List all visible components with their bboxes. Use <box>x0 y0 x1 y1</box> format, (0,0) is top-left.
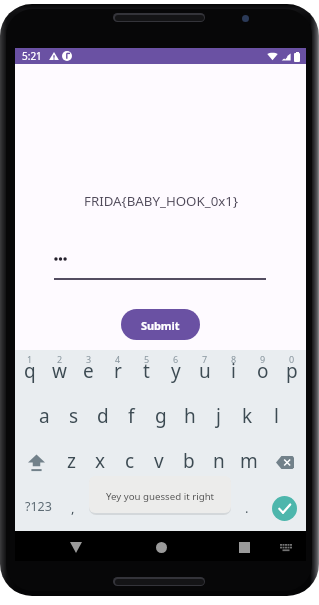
button[interactable]: g <box>146 395 175 440</box>
staticText: 7 <box>202 353 208 365</box>
staticText: x <box>95 448 106 474</box>
button[interactable]: Enter <box>272 496 297 521</box>
staticText: FRIDA{BABY_HOOK_0x1} <box>84 192 238 210</box>
button[interactable]: z <box>57 440 86 485</box>
button[interactable]: l <box>262 395 291 440</box>
staticText: ?123 <box>25 498 52 515</box>
staticText: 5 <box>144 353 150 365</box>
staticText: 3 <box>86 353 92 365</box>
staticText: 0 <box>289 353 295 365</box>
button[interactable]: Shift <box>15 440 57 485</box>
staticText: r <box>114 358 122 384</box>
button[interactable]: a <box>30 395 59 440</box>
staticText: 5:21 <box>22 49 42 63</box>
button[interactable]: j <box>204 395 233 440</box>
staticText: u <box>199 358 211 384</box>
staticText: m <box>240 448 258 474</box>
button[interactable]: 9 <box>248 350 277 395</box>
button[interactable]: 1 <box>15 350 45 395</box>
button[interactable]: 2 <box>45 350 74 395</box>
button[interactable]: c <box>115 440 144 485</box>
staticText: q <box>24 358 36 384</box>
staticText: e <box>83 358 94 384</box>
staticText: h <box>184 403 196 429</box>
button[interactable]: n <box>204 440 234 485</box>
staticText: Submit <box>141 318 180 333</box>
button[interactable]: Switch keyboard <box>274 536 298 560</box>
button[interactable]: h <box>175 395 204 440</box>
button[interactable]: s <box>59 395 88 440</box>
button[interactable]: 3 <box>74 350 103 395</box>
staticText: y <box>171 358 181 384</box>
button[interactable]: Submit <box>121 309 200 340</box>
staticText: l <box>274 403 279 429</box>
button[interactable]: . <box>233 485 261 531</box>
button[interactable]: Recents <box>230 533 258 561</box>
staticText: j <box>216 403 221 429</box>
button[interactable]: , <box>59 485 87 531</box>
button[interactable]: Home <box>147 533 175 561</box>
button[interactable]: v <box>144 440 174 485</box>
button[interactable]: m <box>234 440 264 485</box>
staticText: a <box>39 403 50 429</box>
staticText: k <box>242 403 253 429</box>
button[interactable]: d <box>88 395 117 440</box>
staticText: c <box>125 448 135 474</box>
button[interactable]: 7 <box>190 350 219 395</box>
staticText: s <box>69 403 79 429</box>
staticText: 9 <box>260 353 266 365</box>
button[interactable]: ?123 <box>17 485 59 531</box>
staticText: z <box>67 448 76 474</box>
button[interactable]: Backspace <box>264 440 306 485</box>
staticText: g <box>155 403 167 429</box>
staticText: f <box>128 403 135 429</box>
button[interactable]: k <box>233 395 262 440</box>
staticText: . <box>245 499 249 517</box>
button[interactable]: Back <box>62 533 90 561</box>
staticText: 1 <box>27 353 33 365</box>
staticText: 6 <box>173 353 179 365</box>
staticText: t <box>143 358 150 384</box>
staticText: 4 <box>115 353 121 365</box>
button[interactable]: 6 <box>161 350 190 395</box>
button[interactable]: 8 <box>219 350 248 395</box>
staticText: v <box>154 448 164 474</box>
staticText: d <box>97 403 109 429</box>
staticText: w <box>52 358 67 384</box>
staticText: p <box>286 358 298 384</box>
button[interactable]: 5 <box>132 350 161 395</box>
staticText: i <box>231 358 236 384</box>
staticText: 8 <box>231 353 237 365</box>
staticText: n <box>213 448 225 474</box>
staticText: , <box>71 499 75 517</box>
staticText: Yey you guessed it right <box>106 490 215 503</box>
staticText: o <box>257 358 269 384</box>
button[interactable]: b <box>174 440 204 485</box>
button[interactable]: 0 <box>277 350 306 395</box>
staticText: 2 <box>57 353 63 365</box>
staticText: b <box>183 448 195 474</box>
button[interactable]: f <box>117 395 146 440</box>
button[interactable]: x <box>86 440 115 485</box>
button[interactable]: 4 <box>103 350 132 395</box>
